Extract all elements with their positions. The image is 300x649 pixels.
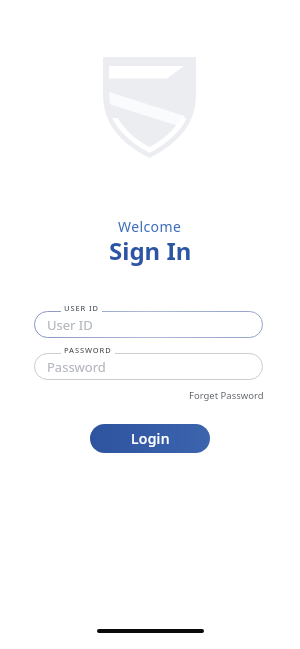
button[interactable]: User ID — [34, 311, 263, 338]
button[interactable]: Password — [34, 353, 263, 380]
staticText: Welcome — [118, 217, 182, 236]
staticText: USER ID — [64, 303, 99, 313]
staticText: Sign In — [109, 234, 192, 267]
staticText: Login — [131, 429, 170, 448]
button[interactable]: Forget Password — [189, 389, 264, 402]
staticText: PASSWORD — [64, 345, 112, 355]
staticText: Password — [47, 358, 106, 376]
staticText: User ID — [47, 316, 93, 334]
button[interactable]: Login — [90, 424, 210, 453]
